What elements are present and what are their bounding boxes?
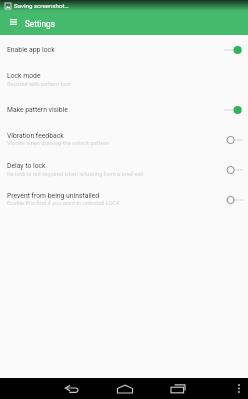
- staticText: Delay to lock: [7, 162, 46, 170]
- button[interactable]: [0, 67, 248, 95]
- staticText: Prevent from being uninstalled: [7, 192, 100, 200]
- button[interactable]: Off: [221, 193, 246, 207]
- button[interactable]: On: [221, 43, 246, 57]
- button[interactable]: [0, 157, 248, 185]
- button[interactable]: Home: [113, 378, 136, 399]
- staticText: Saving screenshot…: [14, 2, 69, 9]
- button[interactable]: [0, 126, 248, 154]
- button[interactable]: Off: [221, 163, 246, 177]
- button[interactable]: Menu: [5, 11, 22, 33]
- staticText: Secured with pattern lock: [7, 81, 72, 88]
- staticText: Settings: [25, 19, 55, 29]
- staticText: Re-lock is not required when returning f…: [7, 171, 144, 178]
- button[interactable]: [0, 100, 248, 124]
- button[interactable]: Off: [221, 133, 246, 147]
- staticText: Lock mode: [7, 72, 41, 80]
- staticText: Enable app lock: [7, 46, 55, 54]
- button[interactable]: On: [221, 103, 246, 117]
- staticText: Vibrate when drawing the unlock pattern: [7, 140, 109, 147]
- staticText: Make pattern visible: [7, 106, 68, 114]
- button[interactable]: Back: [60, 378, 82, 399]
- staticText: Enable this first if you want to uninsta…: [7, 200, 120, 207]
- button[interactable]: More options: [230, 378, 248, 399]
- button[interactable]: [0, 186, 248, 214]
- button[interactable]: Recent apps: [167, 378, 189, 399]
- staticText: Vibration feedback: [7, 132, 64, 140]
- button[interactable]: [0, 40, 248, 64]
